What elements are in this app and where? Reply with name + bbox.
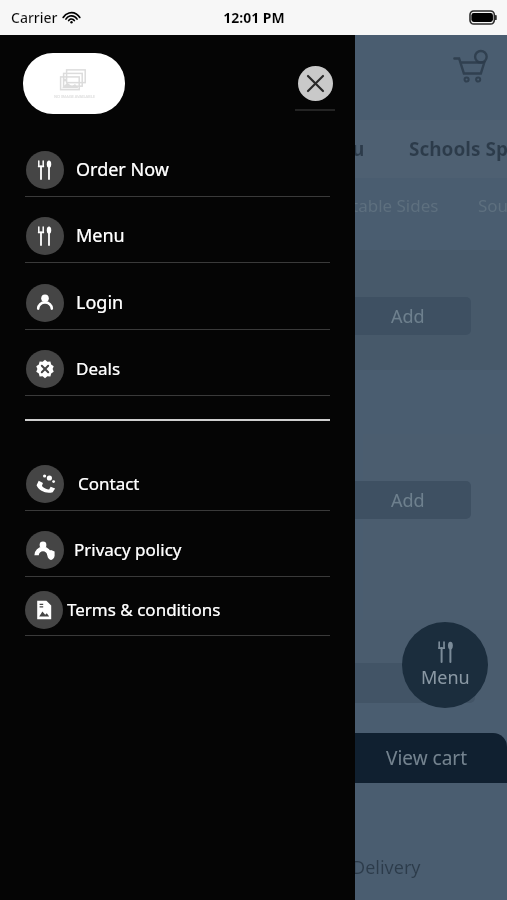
staticText: NO IMAGE AVAILABLE <box>54 94 95 99</box>
staticText: Delivery <box>352 855 421 880</box>
staticText: Login <box>76 290 124 315</box>
staticText: Add <box>391 304 425 329</box>
staticText: Terms & conditions <box>67 598 221 621</box>
button[interactable]: Add <box>345 297 471 335</box>
button[interactable]: View cart <box>345 733 507 783</box>
staticText: Deals <box>76 357 121 380</box>
button[interactable]: Order Now <box>0 143 355 196</box>
button[interactable]: Add <box>345 481 471 519</box>
staticText: Contact <box>78 472 140 495</box>
staticText: table Sides <box>352 194 439 217</box>
staticText: Schools Spe <box>409 136 507 162</box>
staticText: Menu <box>76 223 125 248</box>
button[interactable]: Contact <box>0 457 355 510</box>
staticText: View cart <box>386 745 467 771</box>
staticText: Privacy policy <box>74 538 182 561</box>
button[interactable]: Privacy policy <box>0 523 355 576</box>
staticText: Carrier <box>11 8 58 27</box>
staticText: Sou <box>478 194 507 217</box>
button[interactable]: Close <box>298 66 333 101</box>
staticText: u <box>352 136 365 162</box>
button[interactable]: Cart <box>446 44 494 92</box>
staticText: 12:01 PM <box>223 8 285 27</box>
button[interactable]: Menu <box>402 622 488 708</box>
button[interactable]: Login <box>0 276 355 329</box>
button[interactable]: Menu <box>0 209 355 262</box>
staticText: Order Now <box>76 157 169 182</box>
staticText: Menu <box>421 665 470 690</box>
staticText: Add <box>391 488 425 513</box>
button[interactable]: Terms & conditions <box>0 583 355 636</box>
button[interactable]: Deals <box>0 342 355 395</box>
